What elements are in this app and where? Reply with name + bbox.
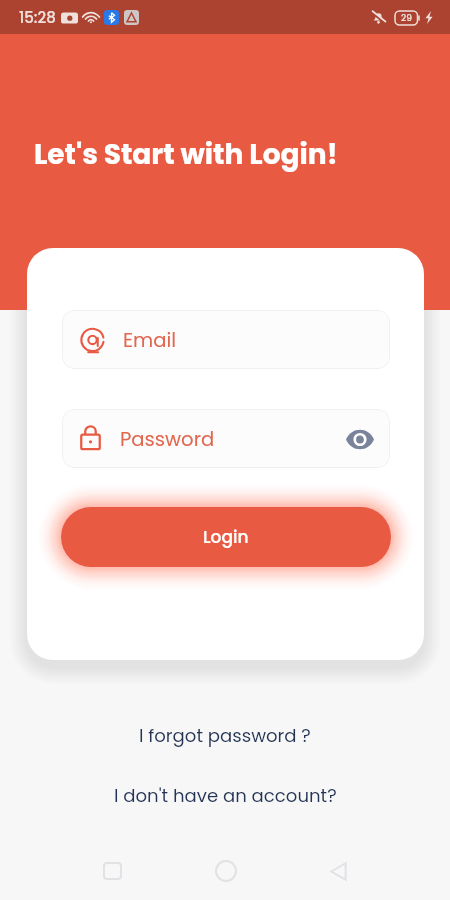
staticText: Let's Start with Login! [34,135,338,174]
button[interactable]: Email [62,310,390,369]
staticText: I forgot password ? [139,723,311,748]
button[interactable]: I don't have an account? [104,778,347,813]
staticText: 29 [401,12,412,25]
staticText: 15:28 [19,7,56,28]
staticText: Login [203,525,249,549]
button[interactable]: Login [61,507,391,567]
button[interactable]: Password [62,409,390,468]
staticText: Email [123,326,177,353]
staticText: Password [120,425,215,452]
staticText: I don't have an account? [114,783,337,808]
button[interactable]: Show password [344,423,376,455]
button[interactable]: I forgot password ? [129,718,321,753]
